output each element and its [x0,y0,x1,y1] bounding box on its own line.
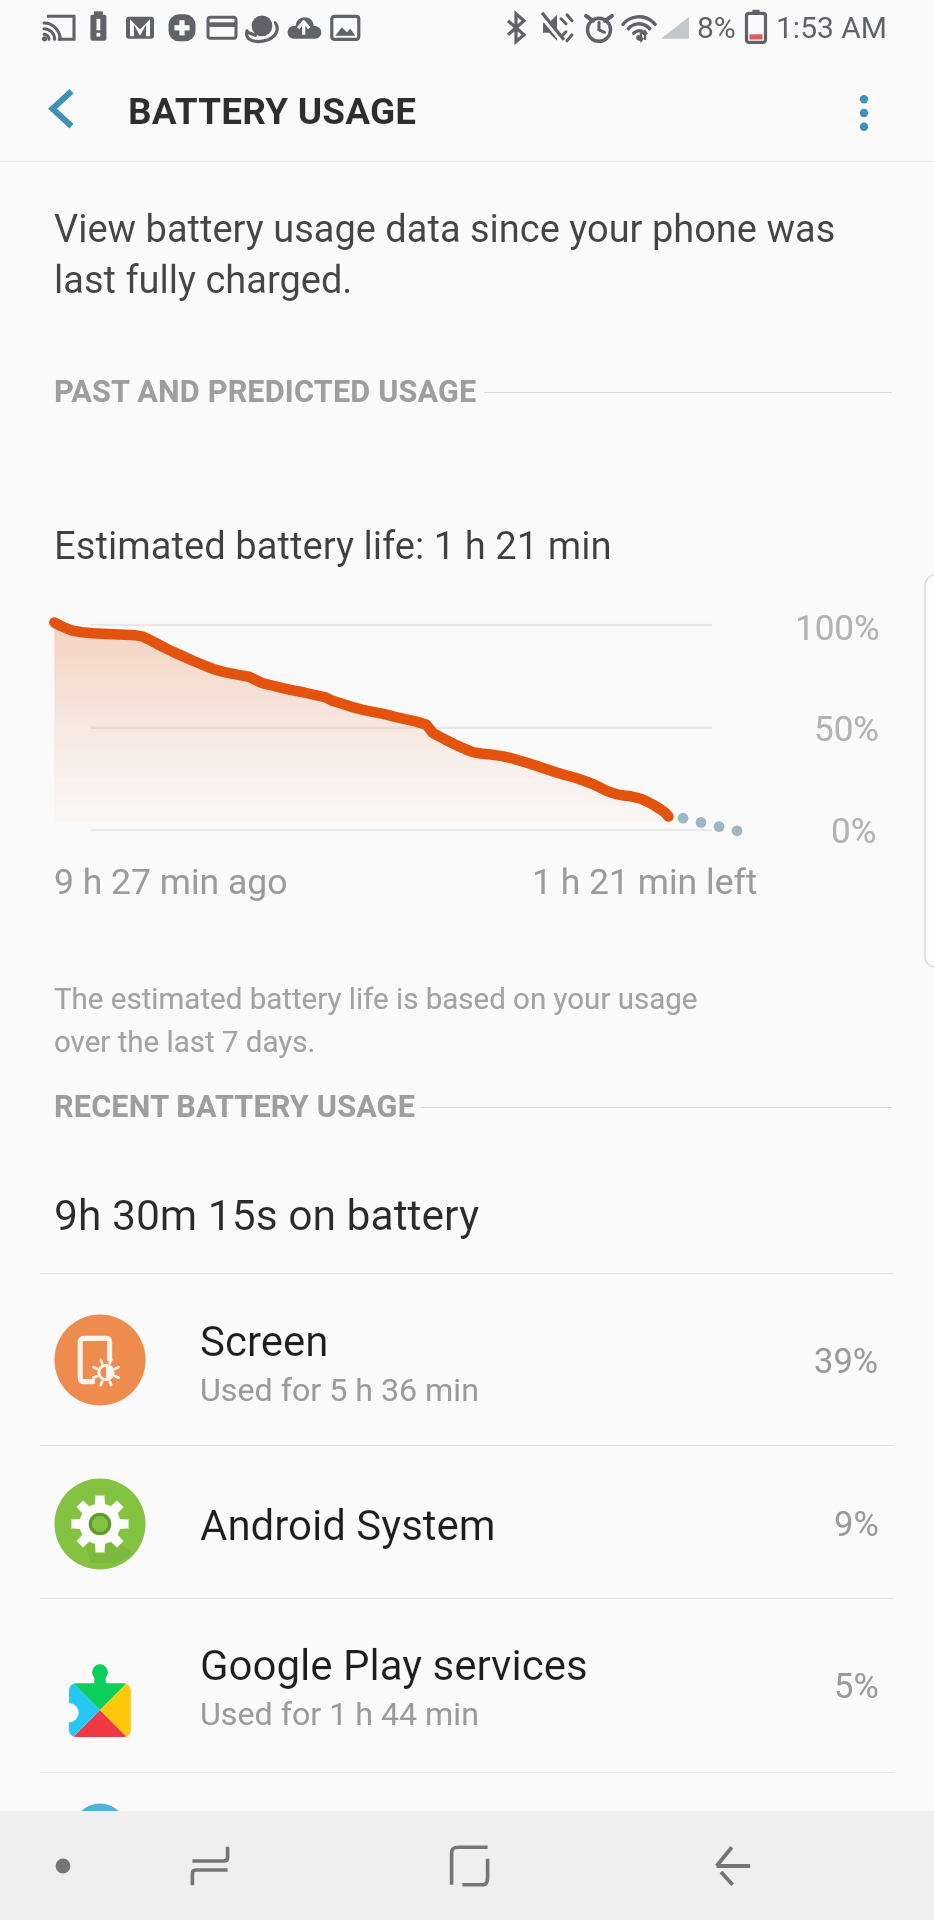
staticText: 9% [834,1504,879,1544]
staticText: 8% [697,10,736,45]
staticText: 39% [814,1341,879,1381]
staticText: Google Play services [200,1641,588,1690]
button[interactable]: Google Play services [0,1598,934,1772]
staticText: 9h 30m 15s on battery [54,1190,480,1240]
staticText: Used for 5 h 36 min [200,1371,479,1409]
staticText: The estimated battery life is based on y… [54,982,698,1059]
button[interactable]: Menu [9,1812,117,1920]
button[interactable]: Home [416,1812,524,1920]
staticText: Estimated battery life: 1 h 21 min [54,524,612,569]
button[interactable]: Android System [0,1445,934,1598]
staticText: 0% [831,811,877,852]
staticText: Android System [200,1501,496,1550]
staticText: Used for 1 h 44 min [200,1695,479,1733]
staticText: 100% [795,608,880,649]
button[interactable]: Navigate up [12,64,112,162]
staticText: 5% [834,1666,879,1706]
staticText: PAST AND PREDICTED USAGE [54,374,477,410]
staticText: 9 h 27 min ago [54,861,288,903]
button[interactable]: Screen [0,1273,934,1445]
staticText: Screen [200,1317,329,1366]
staticText: RECENT BATTERY USAGE [54,1089,416,1125]
staticText: BATTERY USAGE [128,90,417,133]
button[interactable]: Back [679,1812,787,1920]
staticText: 1:53 AM [776,10,888,45]
staticText: View battery usage data since your phone… [54,207,836,303]
staticText: 50% [814,709,879,750]
button[interactable]: Recent apps [156,1812,264,1920]
staticText: 1 h 21 min left [532,861,758,903]
button[interactable]: More options [814,64,914,162]
